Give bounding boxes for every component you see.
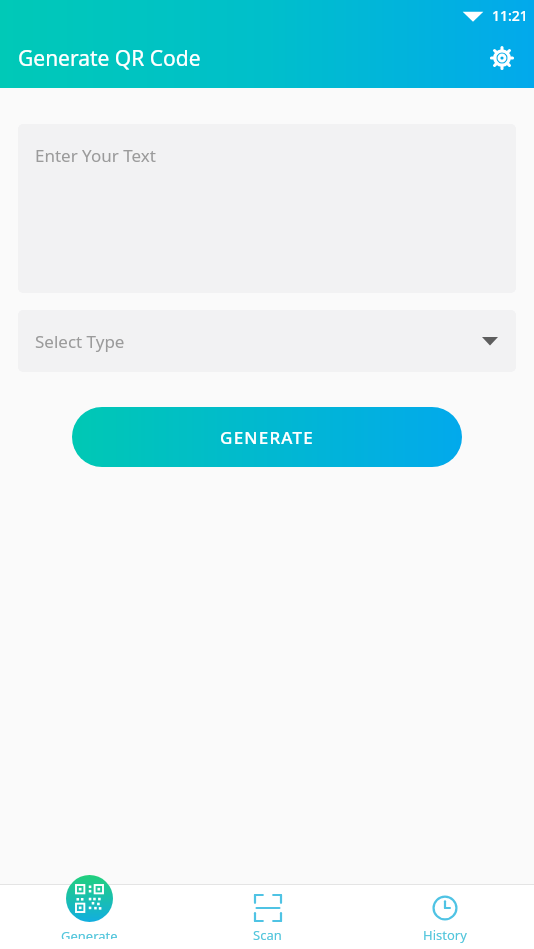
staticText: Scan — [253, 926, 282, 944]
staticText: Enter Your Text — [35, 144, 156, 167]
staticText: Generate QR Code — [18, 44, 201, 73]
button[interactable]: GENERATE — [72, 407, 462, 467]
staticText: 11:21 — [492, 6, 528, 25]
staticText: Select Type — [35, 330, 125, 353]
button[interactable]: Generate — [0, 885, 178, 949]
button[interactable]: Enter Your Text — [18, 124, 516, 293]
staticText: Generate — [61, 927, 118, 939]
button[interactable]: Select Type — [18, 310, 516, 372]
button[interactable]: Settings — [480, 36, 524, 80]
staticText: GENERATE — [220, 426, 314, 449]
button[interactable]: Scan — [178, 885, 356, 949]
staticText: History — [423, 926, 467, 944]
button[interactable]: History — [356, 885, 534, 949]
